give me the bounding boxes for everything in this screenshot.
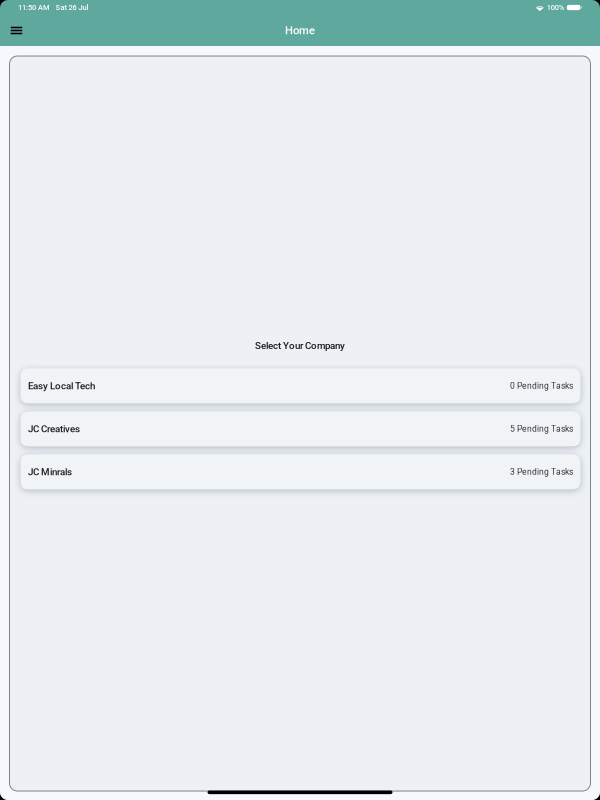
staticText: 11:50 AM <box>18 3 50 12</box>
staticText: 3 Pending Tasks <box>510 467 573 477</box>
button[interactable]: JC Minrals <box>20 454 580 489</box>
staticText: 5 Pending Tasks <box>510 424 573 434</box>
staticText: JC Minrals <box>28 466 72 478</box>
staticText: Sat 26 Jul <box>55 3 88 12</box>
staticText: Select Your Company <box>255 340 345 351</box>
staticText: 100% <box>547 3 564 12</box>
staticText: 0 Pending Tasks <box>510 381 573 391</box>
staticText: Home <box>285 24 315 37</box>
staticText: JC Creatives <box>28 423 80 435</box>
staticText: Easy Local Tech <box>28 380 95 392</box>
button[interactable]: Menu <box>0 15 33 46</box>
button[interactable]: Easy Local Tech <box>20 368 580 403</box>
button[interactable]: JC Creatives <box>20 411 580 446</box>
